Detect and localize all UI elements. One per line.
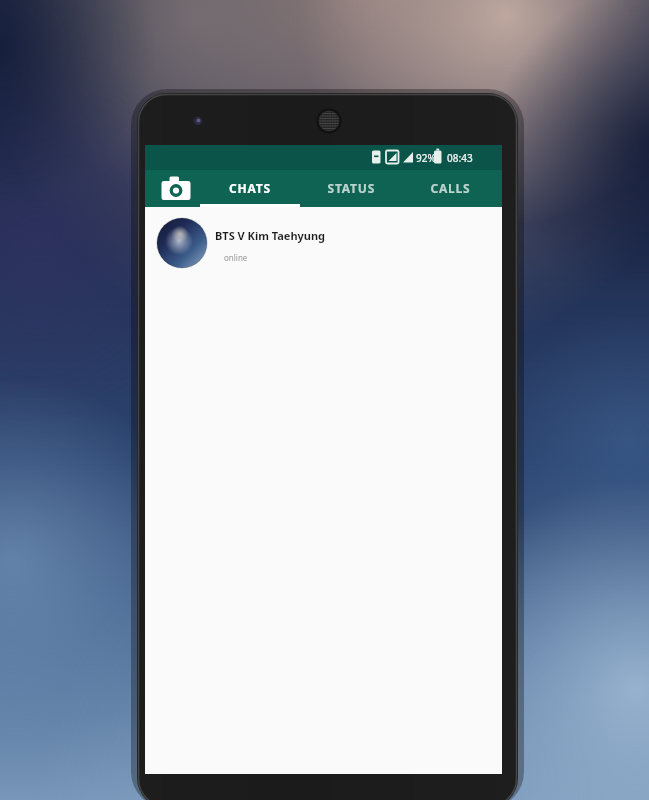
- button[interactable]: Camera: [151, 171, 201, 206]
- button[interactable]: [200, 170, 300, 207]
- button[interactable]: [303, 170, 400, 207]
- button[interactable]: [404, 170, 498, 207]
- button[interactable]: [145, 207, 502, 277]
